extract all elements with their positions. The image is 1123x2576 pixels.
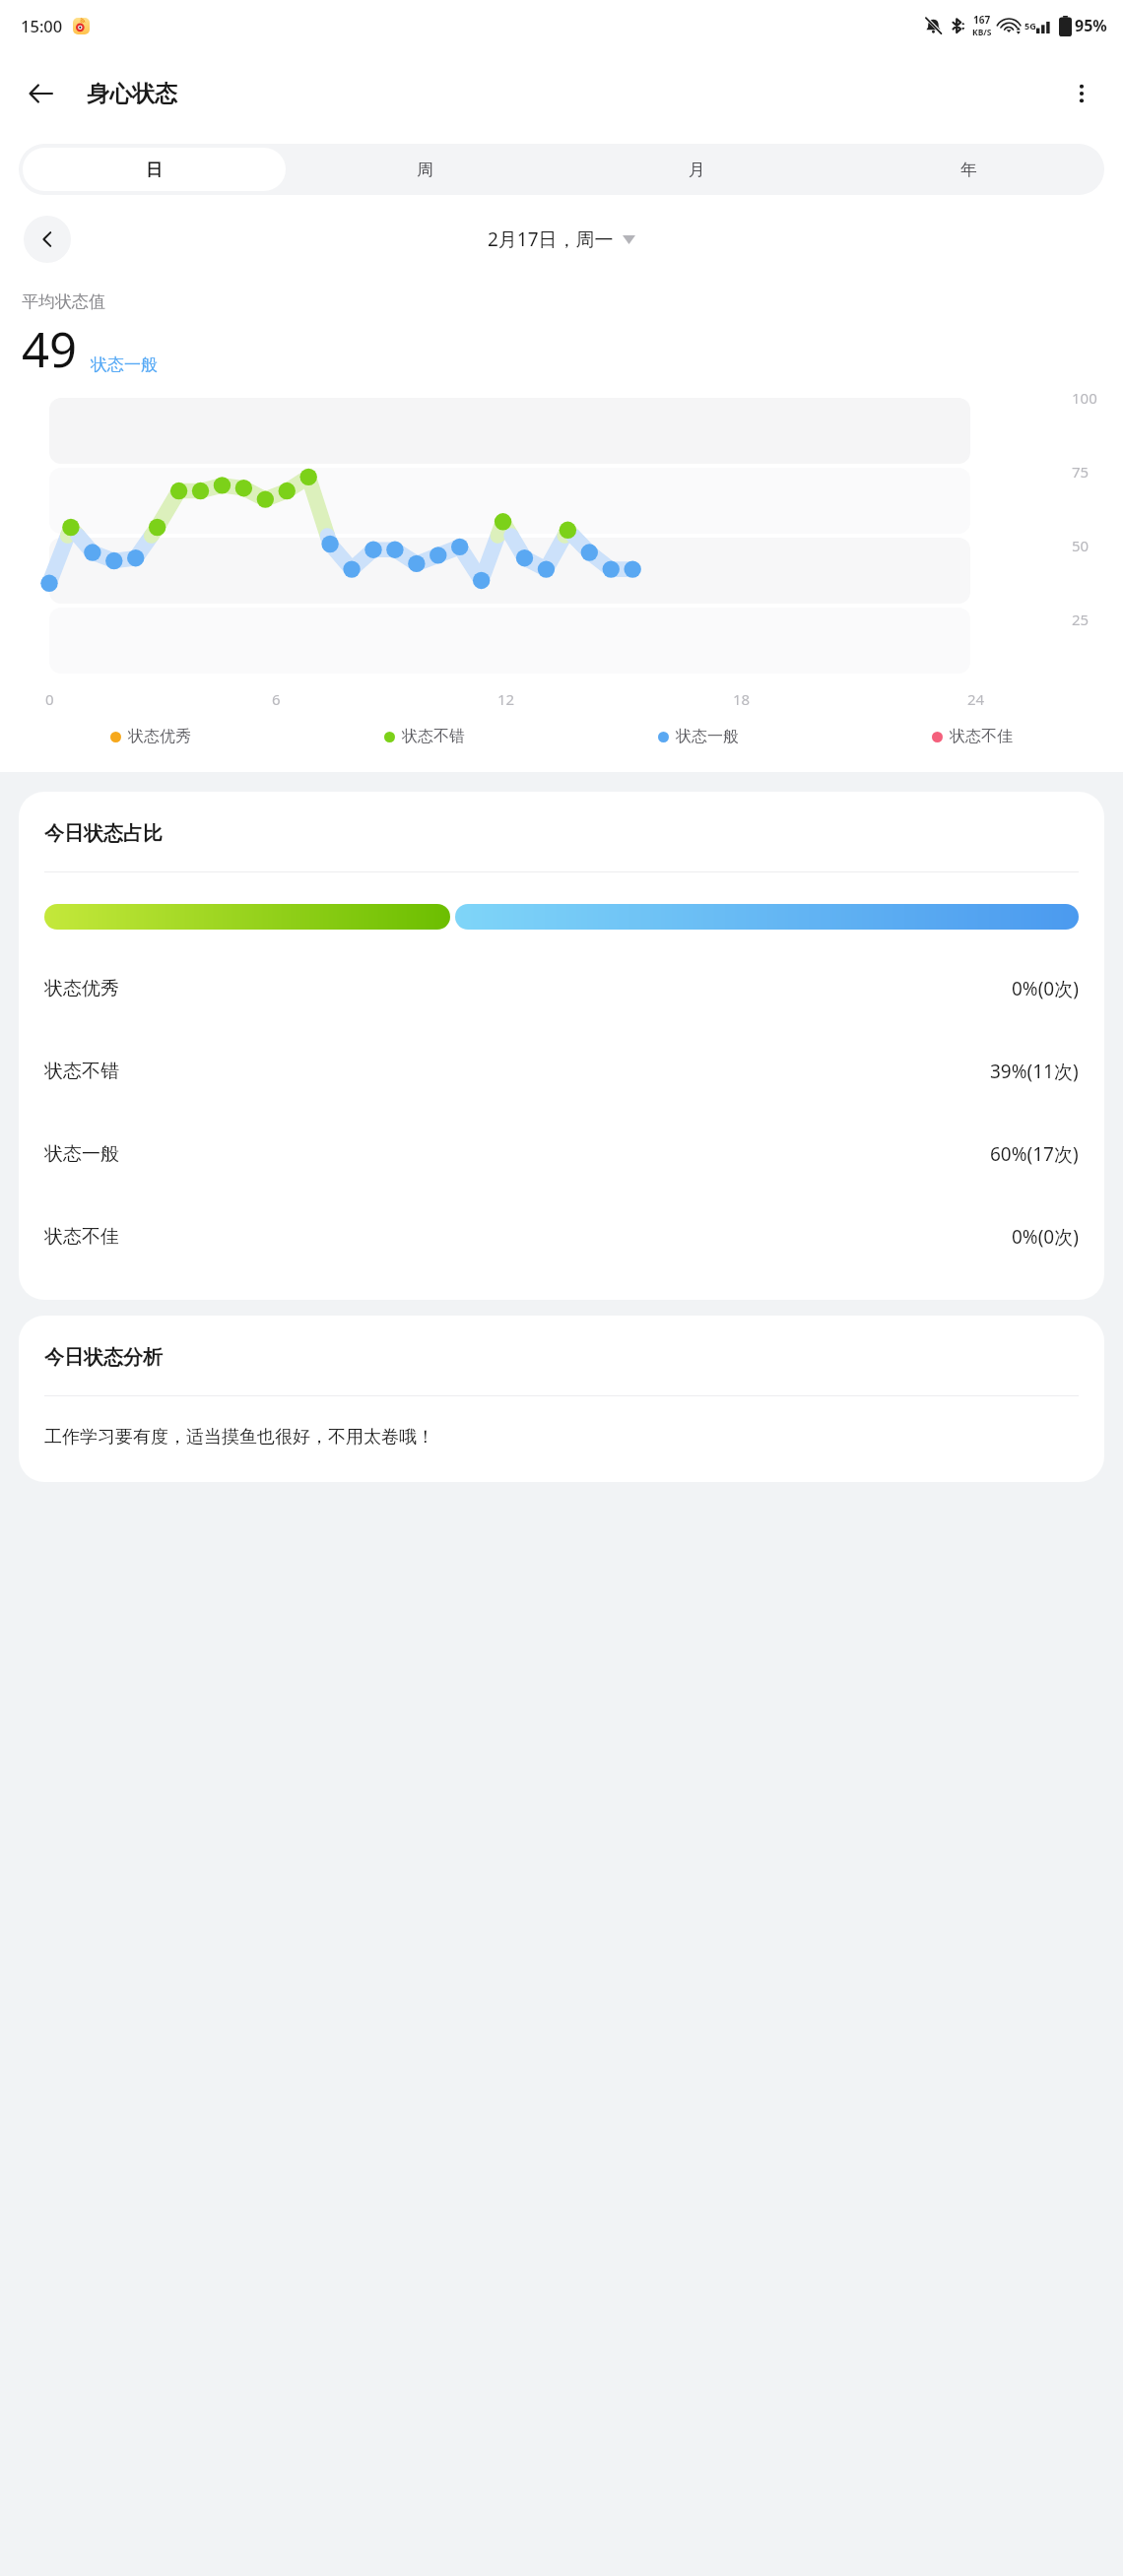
staticText: 状态一般 <box>676 727 739 746</box>
button[interactable]: 年 <box>836 148 1100 191</box>
staticText: 平均状态值 <box>22 291 105 312</box>
staticText: 状态优秀 <box>44 977 119 1000</box>
staticText: 0 <box>45 689 54 709</box>
button[interactable]: 日 <box>23 148 286 191</box>
staticText: KB/S <box>972 27 992 38</box>
staticText: 25 <box>1072 610 1090 629</box>
staticText: 24 <box>967 689 985 709</box>
staticText: 167 <box>973 13 991 27</box>
staticText: 75 <box>1072 462 1090 482</box>
staticText: 39%(11次) <box>990 1059 1079 1084</box>
staticText: 6 <box>272 689 281 709</box>
staticText: 100 <box>1072 388 1097 408</box>
staticText: 2月17日，周一 <box>488 226 614 252</box>
staticText: 状态一般 <box>44 1142 119 1166</box>
staticText: 15:00 <box>21 15 63 36</box>
staticText: 状态不佳 <box>44 1225 119 1249</box>
button[interactable]: 周 <box>294 148 557 191</box>
staticText: 月 <box>689 160 705 180</box>
button[interactable]: 2月17日，周一 <box>482 223 641 256</box>
staticText: 状态不错 <box>44 1060 119 1083</box>
button[interactable]: 状态一般 <box>44 1113 1079 1195</box>
button[interactable]: 上一天 <box>24 216 71 263</box>
staticText: 周 <box>417 160 433 180</box>
button[interactable]: 返回 <box>14 66 69 121</box>
button[interactable]: 更多选项 <box>1056 68 1107 119</box>
staticText: 今日状态分析 <box>44 1345 163 1370</box>
staticText: 60%(17次) <box>990 1141 1079 1167</box>
staticText: 状态优秀 <box>128 727 191 746</box>
staticText: 12 <box>497 689 515 709</box>
button[interactable]: 今日状态分析 <box>19 1316 1104 1482</box>
button[interactable]: 状态不错 <box>44 1030 1079 1113</box>
staticText: 状态一般 <box>91 354 158 375</box>
staticText: 工作学习要有度，适当摸鱼也很好，不用太卷哦！ <box>44 1426 434 1449</box>
button[interactable]: 状态不佳 <box>44 1195 1079 1278</box>
staticText: 0%(0次) <box>1012 976 1079 1001</box>
staticText: 18 <box>733 689 751 709</box>
button[interactable]: 状态优秀 <box>44 947 1079 1030</box>
staticText: 5G <box>1024 20 1036 32</box>
staticText: 日 <box>146 160 163 180</box>
staticText: 49 <box>22 316 78 382</box>
staticText: 状态不错 <box>402 727 465 746</box>
button[interactable]: 今日状态占比 <box>19 792 1104 1300</box>
staticText: 今日状态占比 <box>44 821 163 846</box>
staticText: 50 <box>1072 536 1090 555</box>
staticText: 年 <box>960 160 977 180</box>
staticText: 状态不佳 <box>950 727 1013 746</box>
staticText: 0%(0次) <box>1012 1224 1079 1250</box>
staticText: 95% <box>1075 15 1107 36</box>
staticText: 身心状态 <box>87 80 177 108</box>
button[interactable]: 月 <box>564 148 828 191</box>
